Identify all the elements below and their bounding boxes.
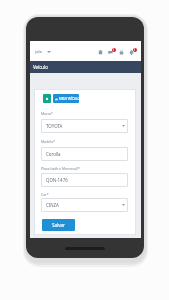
button[interactable]: QON-1476 [41,173,128,187]
staticText: QON-1476 [46,177,68,183]
button[interactable]: julia [32,47,54,56]
button[interactable]: MEUS VEÍCULOS [53,94,79,103]
button[interactable]: CINZA [41,198,128,212]
staticText: TOYOTA [46,123,63,129]
staticText: Cor* [41,192,49,197]
staticText: julia [35,49,42,54]
button[interactable]: Notificações [126,41,136,61]
staticText: Salvar [52,222,65,228]
button[interactable]: Salvar [42,219,75,231]
staticText: Marca* [41,111,53,116]
staticText: 1 [134,48,136,52]
button[interactable]: TOYOTA [41,119,128,133]
staticText: Modelo* [41,139,56,144]
button[interactable]: Veículo [30,61,141,73]
button[interactable]: Ajuda [116,41,126,61]
staticText: MEUS VEÍCULOS [59,97,79,101]
staticText: CINZA [46,202,59,208]
button[interactable]: Mensagens [105,41,115,61]
staticText: Veículo [33,64,48,70]
staticText: 1 [113,48,115,52]
button[interactable]: Novo veículo [43,94,51,103]
button[interactable]: Corolla [41,147,128,161]
staticText: Placa (with e Mercosul)* [41,166,80,171]
staticText: Corolla [46,151,61,157]
button[interactable]: Documentos [95,41,105,61]
